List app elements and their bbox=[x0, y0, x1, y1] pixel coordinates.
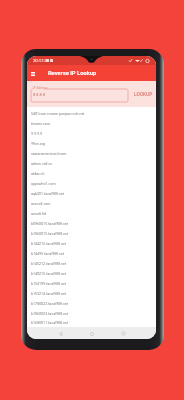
button[interactable]: b153214.facal988.net bbox=[27, 289, 156, 299]
staticText: akkar.ch bbox=[31, 172, 45, 176]
button[interactable]: b1860033.facal988.net bbox=[27, 309, 156, 319]
button[interactable]: aqb201.facal988.net bbox=[27, 189, 156, 199]
staticText: b0960015.facal988.net bbox=[31, 222, 69, 226]
button[interactable]: ansoft.ltd bbox=[27, 209, 156, 219]
staticText: tiname.com bbox=[31, 122, 51, 126]
staticText: b1060015.facal988.net bbox=[31, 232, 69, 236]
staticText: anscoll.com bbox=[31, 202, 51, 206]
staticText: appswho1.com bbox=[31, 182, 56, 186]
button[interactable]: akkar.ch bbox=[27, 169, 156, 179]
staticText: 20:17:28 bbox=[33, 58, 50, 63]
button[interactable]: appswho1.com bbox=[27, 179, 156, 189]
staticText: 8.8.8.8 bbox=[33, 92, 46, 97]
button[interactable]: b0960015.facal988.net bbox=[27, 219, 156, 229]
staticText: b144212.facal988.net bbox=[31, 242, 67, 246]
button[interactable]: b154199.facal988.net bbox=[27, 279, 156, 289]
staticText: b154199.facal988.net bbox=[31, 282, 67, 286]
button[interactable]: b14495.facal988.net bbox=[27, 249, 156, 259]
staticText: b145212.facal988.net bbox=[31, 262, 67, 266]
staticText: 9.9.9.9 bbox=[31, 132, 42, 136]
staticText: 99cn.org bbox=[31, 142, 46, 146]
staticText: LOOKUP bbox=[134, 92, 153, 98]
staticText: ansoft.ltd bbox=[31, 212, 47, 216]
button[interactable]: admin.vidl.cc bbox=[27, 159, 156, 169]
staticText: 5401com.cname.punjasu-cdn.net bbox=[31, 112, 85, 116]
button[interactable]: Recent apps bbox=[114, 328, 132, 339]
staticText: Reverse IP Lookup bbox=[48, 70, 97, 77]
button[interactable]: b140215.facal988.net bbox=[27, 269, 156, 279]
staticText: b140215.facal988.net bbox=[31, 272, 67, 276]
staticText: admin.vidl.cc bbox=[31, 162, 53, 166]
staticText: IP Address bbox=[33, 86, 48, 90]
button[interactable]: b144212.facal988.net bbox=[27, 239, 156, 249]
button[interactable]: Open navigation menu bbox=[28, 67, 38, 80]
staticText: aqb201.facal988.net bbox=[31, 192, 65, 196]
button[interactable]: LOOKUP bbox=[131, 89, 156, 101]
button[interactable]: b145212.facal988.net bbox=[27, 259, 156, 269]
button[interactable]: b1060015.facal988.net bbox=[27, 229, 156, 239]
button[interactable]: Home bbox=[83, 328, 101, 339]
staticText: b14495.facal988.net bbox=[31, 252, 65, 256]
button[interactable]: 99cn.org bbox=[27, 139, 156, 149]
staticText: sawanamenicord.com bbox=[31, 152, 67, 156]
button[interactable]: b1680011.facal988.net bbox=[27, 319, 156, 327]
staticText: b153214.facal988.net bbox=[31, 292, 67, 296]
button[interactable]: b1780022.facal988.net bbox=[27, 299, 156, 309]
staticText: b1680011.facal988.net bbox=[31, 321, 69, 325]
button[interactable]: 8.8.8.8 bbox=[31, 89, 128, 102]
button[interactable]: Back bbox=[51, 328, 69, 339]
button[interactable]: 5401com.cname.punjasu-cdn.net bbox=[27, 109, 156, 119]
button[interactable]: 9.9.9.9 bbox=[27, 129, 156, 139]
staticText: b1860033.facal988.net bbox=[31, 312, 69, 316]
staticText: b1780022.facal988.net bbox=[31, 302, 69, 306]
button[interactable]: anscoll.com bbox=[27, 199, 156, 209]
button[interactable]: sawanamenicord.com bbox=[27, 149, 156, 159]
button[interactable]: tiname.com bbox=[27, 119, 156, 129]
